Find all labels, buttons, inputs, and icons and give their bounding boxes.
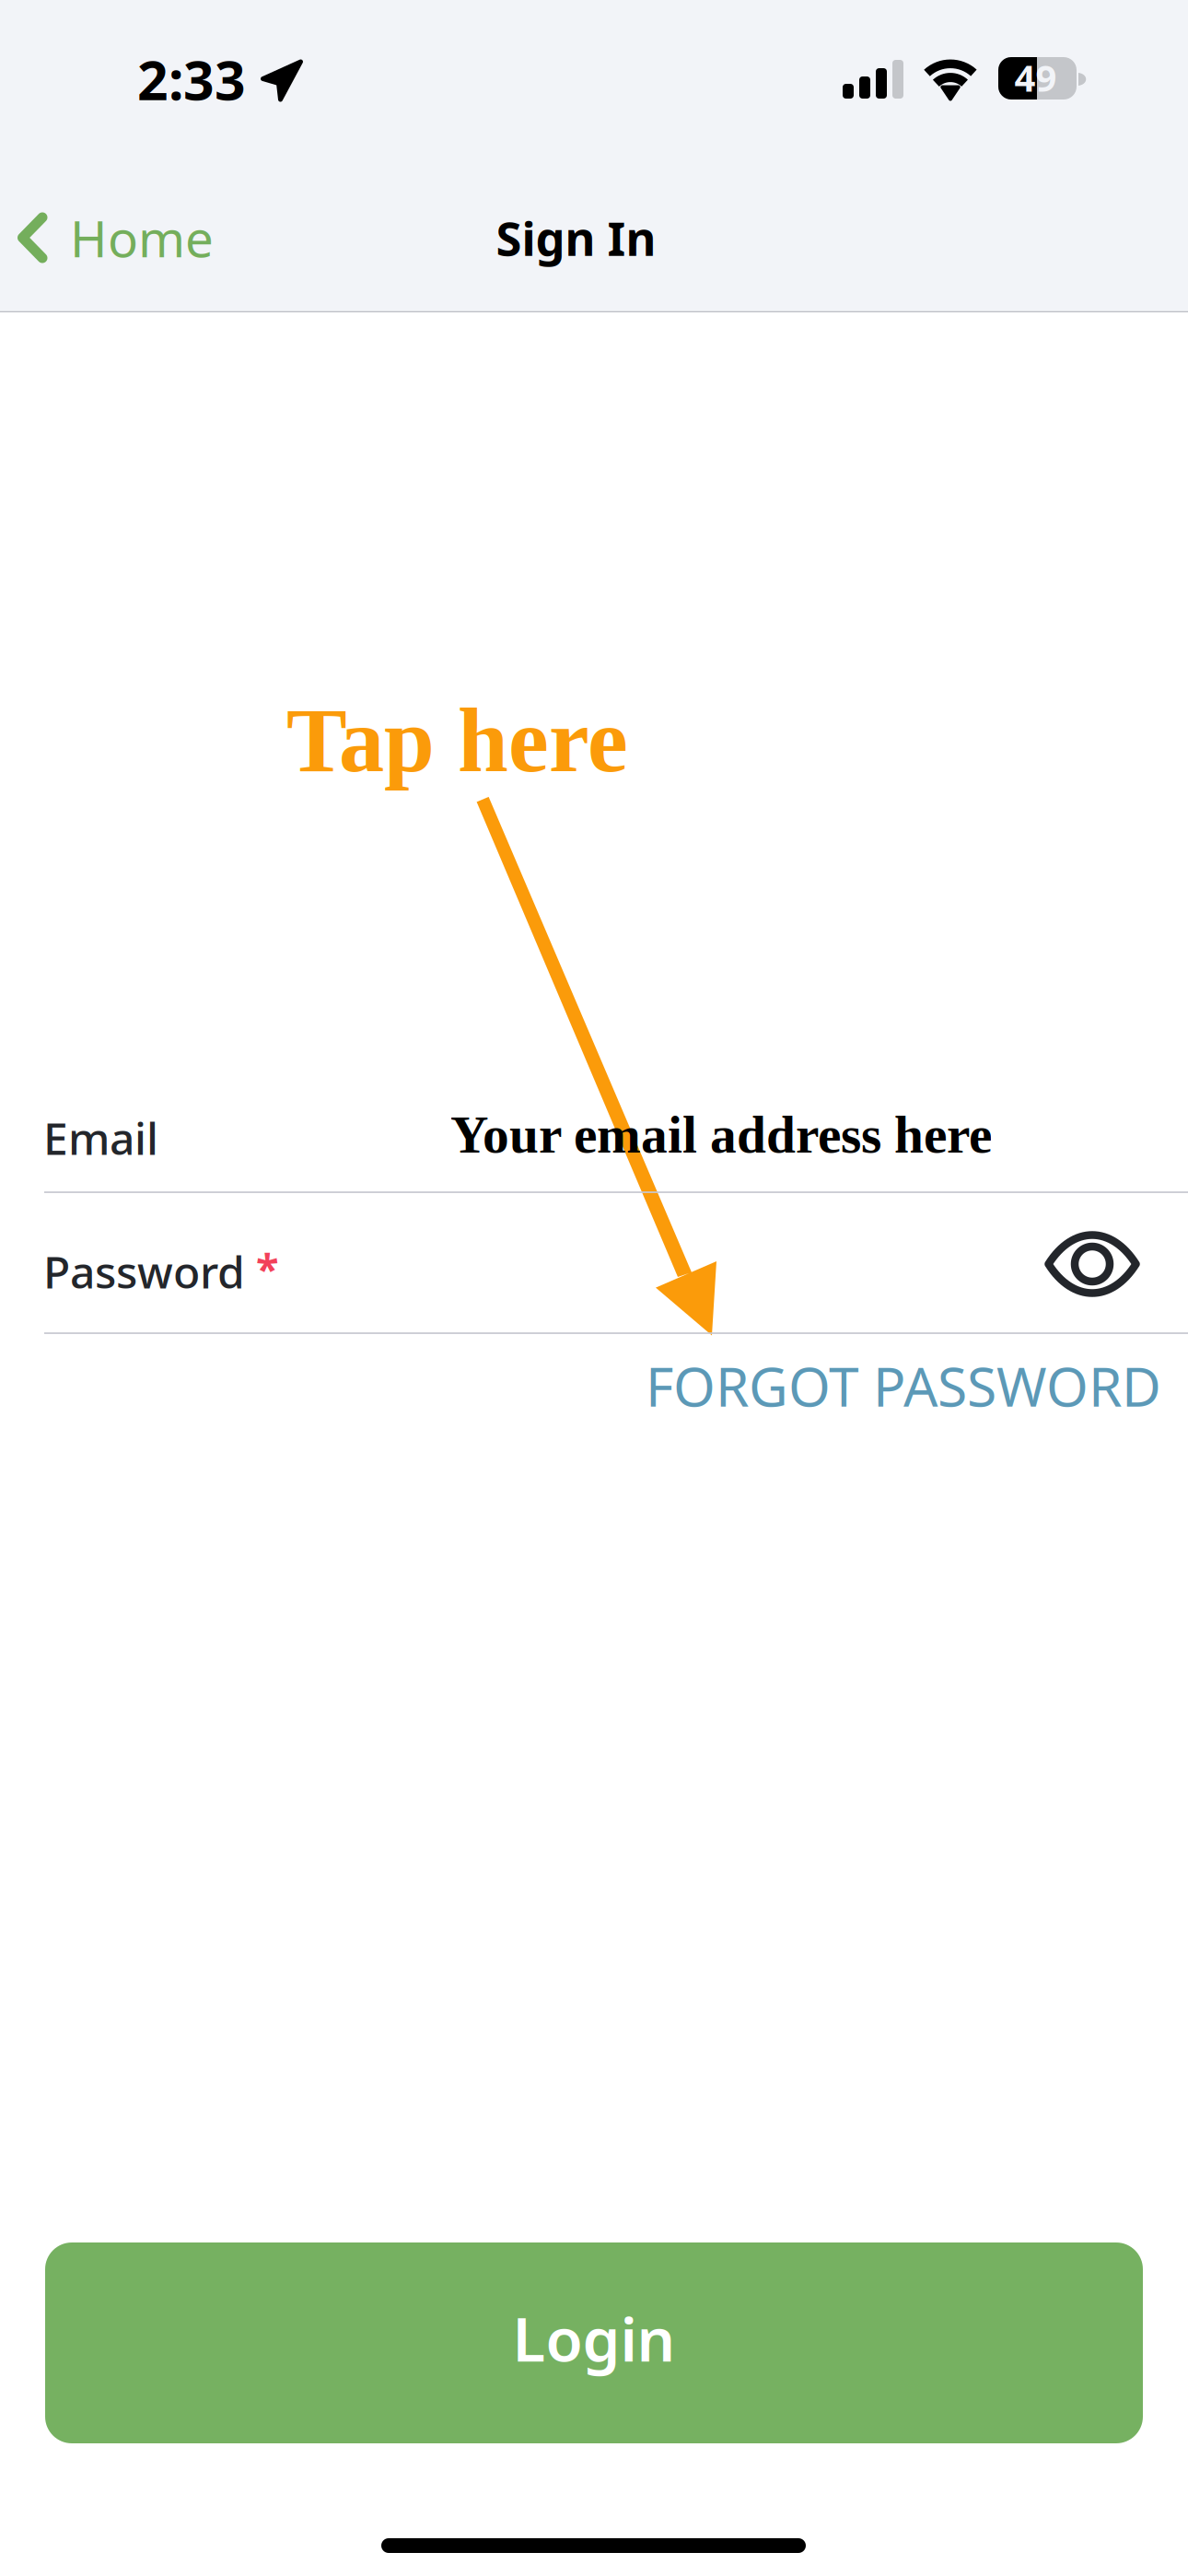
staticText: Tap here	[286, 690, 628, 791]
staticText: Login	[512, 2298, 676, 2378]
staticText: 49	[1014, 53, 1057, 102]
staticText: 2:33	[137, 43, 246, 115]
staticText: *	[256, 1240, 279, 1296]
button[interactable]: Login	[45, 2242, 1143, 2443]
staticText: Sign In	[496, 207, 656, 269]
button[interactable]: Home	[17, 186, 266, 289]
button[interactable]: Show password	[1014, 1195, 1171, 1333]
staticText: Password	[43, 1242, 245, 1301]
button[interactable]: FORGOT PASSWORD	[590, 1338, 1161, 1434]
staticText: Your email address here	[450, 1106, 992, 1164]
staticText: Home	[70, 204, 214, 271]
staticText: FORGOT PASSWORD	[646, 1350, 1161, 1421]
staticText: Email	[43, 1108, 158, 1167]
